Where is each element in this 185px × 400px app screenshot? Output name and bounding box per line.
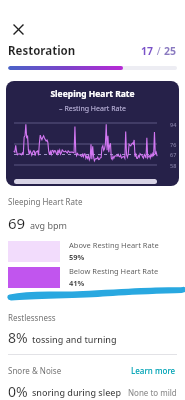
staticText: 41% bbox=[69, 278, 85, 288]
staticText: – Resting Heart Rate bbox=[6, 104, 179, 114]
staticText: 67 bbox=[170, 151, 177, 158]
button[interactable]: Sleeping Heart Rate bbox=[6, 81, 179, 186]
staticText: Below Resting Heart Rate bbox=[69, 266, 159, 276]
staticText: avg bpm bbox=[30, 219, 67, 231]
staticText: Sleeping Heart Rate bbox=[8, 196, 83, 207]
staticText: Above Resting Heart Rate bbox=[69, 240, 159, 250]
staticText: 94 bbox=[170, 121, 177, 128]
button[interactable]: Close bbox=[7, 18, 29, 40]
staticText: 58 bbox=[170, 162, 177, 169]
staticText: 0% bbox=[8, 382, 28, 400]
staticText: Restoration bbox=[8, 43, 76, 59]
button[interactable]: Learn more bbox=[130, 364, 177, 377]
staticText: snoring during sleep bbox=[32, 386, 122, 398]
button[interactable]: Above Resting Heart Rate bbox=[8, 240, 177, 262]
staticText: 8% bbox=[8, 328, 28, 347]
staticText: 59% bbox=[69, 252, 85, 262]
staticText: 25 bbox=[164, 44, 177, 58]
staticText: Restlessness bbox=[8, 312, 56, 323]
staticText: Snore & Noise bbox=[8, 365, 62, 376]
staticText: tossing and turning bbox=[32, 333, 117, 345]
staticText: 17 bbox=[141, 44, 154, 58]
staticText: / bbox=[154, 44, 164, 58]
button[interactable]: Below Resting Heart Rate bbox=[8, 266, 177, 288]
staticText: None to mild bbox=[128, 387, 177, 398]
staticText: Learn more bbox=[131, 365, 176, 376]
staticText: 69 bbox=[8, 213, 26, 233]
staticText: Sleeping Heart Rate bbox=[6, 88, 179, 100]
staticText: 76 bbox=[170, 141, 177, 148]
